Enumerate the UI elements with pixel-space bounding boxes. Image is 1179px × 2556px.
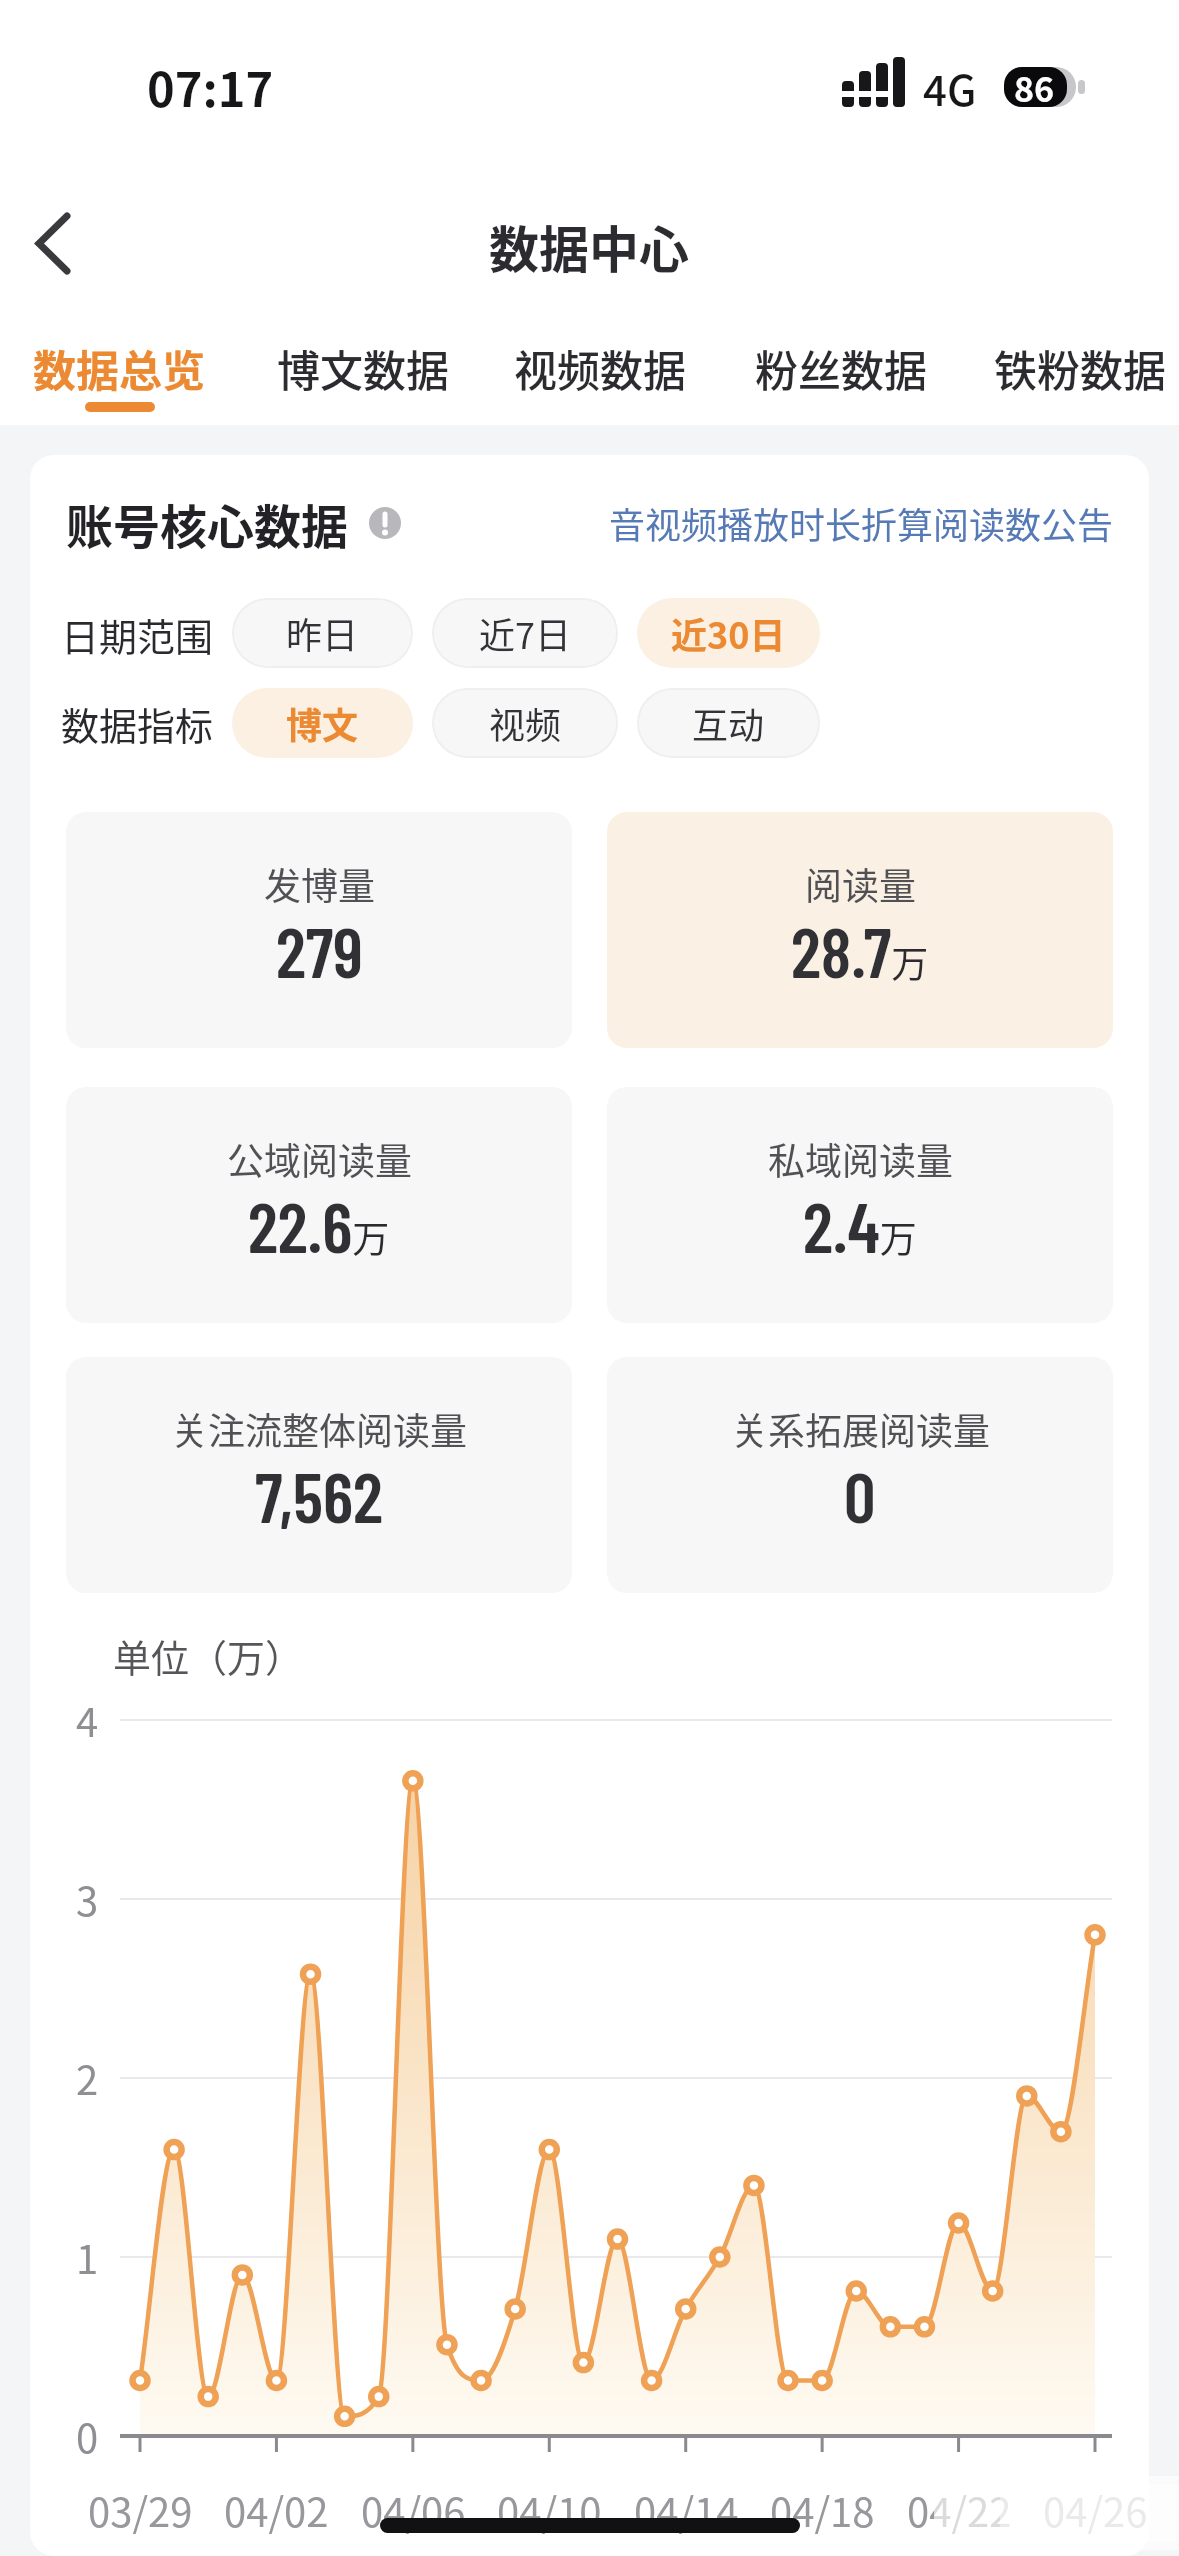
staticText: 7,562	[255, 1453, 383, 1537]
staticText: 博文数据	[277, 337, 449, 399]
button[interactable]: 博文	[232, 688, 413, 758]
staticText: 音视频播放时长折算阅读数公告	[609, 497, 1114, 549]
staticText: 1	[76, 2228, 99, 2286]
staticText: 04/10	[497, 2481, 602, 2539]
button[interactable]: 音视频播放时长折算阅读数公告	[596, 473, 1126, 573]
button[interactable]: 视频数据	[500, 318, 700, 418]
staticText: 视频	[489, 697, 562, 749]
button[interactable]: 近7日	[432, 598, 618, 668]
staticText: 数据指标	[61, 696, 214, 751]
staticText: 日期范围	[61, 607, 214, 662]
staticText: 3	[76, 1870, 99, 1928]
staticText: 私域阅读量	[768, 1132, 953, 1186]
staticText: 发博量	[264, 857, 375, 911]
button[interactable]: 数据总览	[19, 318, 219, 418]
button[interactable]: 关系拓展阅读量	[607, 1357, 1113, 1593]
staticText: 博文	[286, 697, 359, 749]
button[interactable]: 近30日	[637, 598, 820, 668]
staticText: 04/26	[1043, 2481, 1148, 2539]
staticText: 关系拓展阅读量	[731, 1402, 990, 1456]
staticText: 0	[76, 2407, 99, 2465]
button[interactable]: 博文数据	[263, 318, 463, 418]
staticText: 数据总览	[33, 337, 205, 399]
staticText: 2.4万	[803, 1183, 917, 1267]
button[interactable]: 关注流整体阅读量	[66, 1357, 572, 1593]
staticText: 近30日	[671, 607, 786, 659]
staticText: 单位（万）	[113, 1628, 304, 1682]
button[interactable]: 粉丝数据	[741, 318, 941, 418]
staticText: 04/06	[361, 2481, 466, 2539]
staticText: 视频数据	[514, 337, 686, 399]
staticText: 互动	[692, 697, 765, 749]
staticText: 0	[844, 1453, 876, 1537]
staticText: 22.6万	[248, 1183, 390, 1267]
staticText: 28.7万	[791, 908, 929, 992]
button[interactable]: 发博量	[66, 812, 572, 1048]
staticText: 279	[276, 908, 363, 992]
button[interactable]: 视频	[432, 688, 618, 758]
staticText: 数据中心	[489, 210, 689, 282]
staticText: 04/02	[224, 2481, 329, 2539]
button[interactable]: 公域阅读量	[66, 1087, 572, 1323]
staticText: 昨日	[286, 607, 359, 659]
staticText: 近7日	[479, 607, 571, 659]
staticText: 04/22	[907, 2481, 1012, 2539]
staticText: 04/14	[634, 2481, 739, 2539]
staticText: 04/18	[770, 2481, 875, 2539]
staticText: 铁粉数据	[994, 337, 1166, 399]
button[interactable]: 私域阅读量	[607, 1087, 1113, 1323]
staticText: 03/29	[88, 2481, 193, 2539]
staticText: 阅读量	[805, 857, 916, 911]
staticText: 4G	[923, 57, 977, 118]
staticText: 07:17	[147, 52, 274, 120]
button[interactable]: 阅读量	[607, 812, 1113, 1048]
button[interactable]: 互动	[637, 688, 820, 758]
staticText: 公域阅读量	[227, 1132, 412, 1186]
button[interactable]	[20, 200, 110, 290]
staticText: 2	[76, 2049, 99, 2107]
staticText: 账号核心数据	[66, 489, 348, 557]
staticText: 关注流整体阅读量	[171, 1402, 467, 1456]
staticText: 粉丝数据	[755, 337, 927, 399]
button[interactable]: 昨日	[232, 598, 413, 668]
button[interactable]: 铁粉数据	[980, 318, 1179, 418]
staticText: 86	[1014, 63, 1055, 112]
staticText: 4	[76, 1691, 99, 1749]
